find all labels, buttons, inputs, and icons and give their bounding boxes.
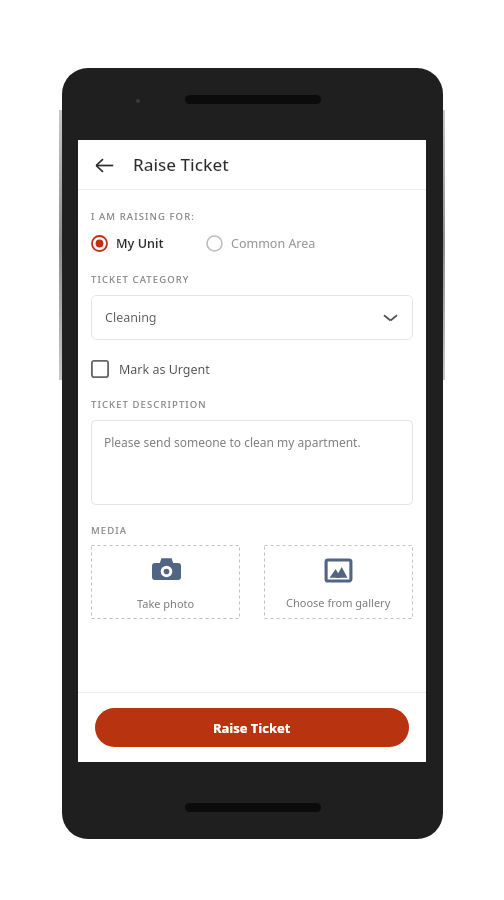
staticText: My Unit [116,235,164,252]
button[interactable]: Cleaning [91,295,413,340]
staticText: Choose from gallery [286,595,391,610]
button[interactable]: Raise Ticket [95,708,409,747]
staticText: Take photo [137,596,195,611]
staticText: Cleaning [105,309,157,326]
button[interactable]: Mark as Urgent [91,360,210,378]
staticText: I AM RAISING FOR: [91,210,195,223]
staticText: TICKET DESCRIPTION [91,398,207,411]
button[interactable]: Choose from gallery [264,545,413,619]
staticText: Raise Ticket [133,153,229,176]
button[interactable]: Common Area [206,235,316,252]
button[interactable]: Take photo [91,545,240,619]
staticText: Please send someone to clean my apartmen… [104,434,361,450]
staticText: Raise Ticket [213,719,291,737]
button[interactable]: Back [88,149,120,181]
button[interactable]: My Unit [91,235,164,252]
staticText: TICKET CATEGORY [91,273,190,286]
staticText: MEDIA [91,524,128,537]
staticText: Common Area [231,235,316,252]
button[interactable]: Please send someone to clean my apartmen… [91,420,413,505]
staticText: Mark as Urgent [119,361,210,378]
